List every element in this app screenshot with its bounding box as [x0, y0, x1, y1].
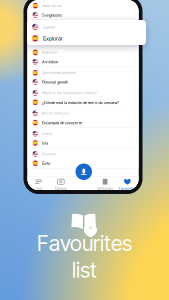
button[interactable]: Where is the nearest train station?	[27, 87, 138, 108]
staticText: Crecimiento personal	[42, 71, 76, 75]
button[interactable]: Explore	[27, 20, 146, 45]
staticText: Island	[42, 132, 52, 136]
staticText: Gafas de sol	[42, 4, 62, 8]
staticText: Encantada de conocerte	[42, 120, 82, 125]
staticText: ¿Dónde está la estación de tren más cerc…	[42, 100, 119, 105]
staticText: Ambición	[42, 50, 57, 55]
staticText: Ambition	[42, 59, 58, 64]
staticText: list	[72, 257, 97, 283]
staticText: Éxito	[42, 161, 50, 166]
button[interactable]: Favourites	[116, 178, 138, 190]
button[interactable]: Crecimiento personal	[27, 67, 138, 87]
staticText: Explore	[43, 24, 55, 30]
button[interactable]: Island	[27, 128, 138, 148]
button[interactable]: Success	[27, 148, 138, 169]
staticText: Text	[35, 186, 42, 190]
staticText: Isla	[42, 140, 48, 146]
staticText: Explorar	[43, 35, 63, 42]
button[interactable]: Gafas de sol	[27, 0, 138, 20]
button[interactable]: Text	[27, 178, 50, 190]
staticText: Success	[42, 152, 56, 156]
staticText: Favourites	[119, 186, 136, 190]
staticText: Camera	[55, 186, 67, 190]
staticText: Sunglasses	[42, 12, 62, 18]
staticText: Favourites	[37, 230, 132, 256]
staticText: Personal growth	[42, 79, 68, 85]
button[interactable]: Camera	[50, 178, 72, 190]
staticText: Nice to meet you	[42, 111, 69, 115]
staticText: Dictionary	[97, 186, 113, 190]
button[interactable]: Nice to meet you	[27, 108, 138, 128]
button[interactable]: Dictionary	[94, 178, 116, 190]
staticText: Where is the nearest train station?	[42, 91, 97, 95]
button[interactable]: Ambición	[27, 47, 138, 67]
